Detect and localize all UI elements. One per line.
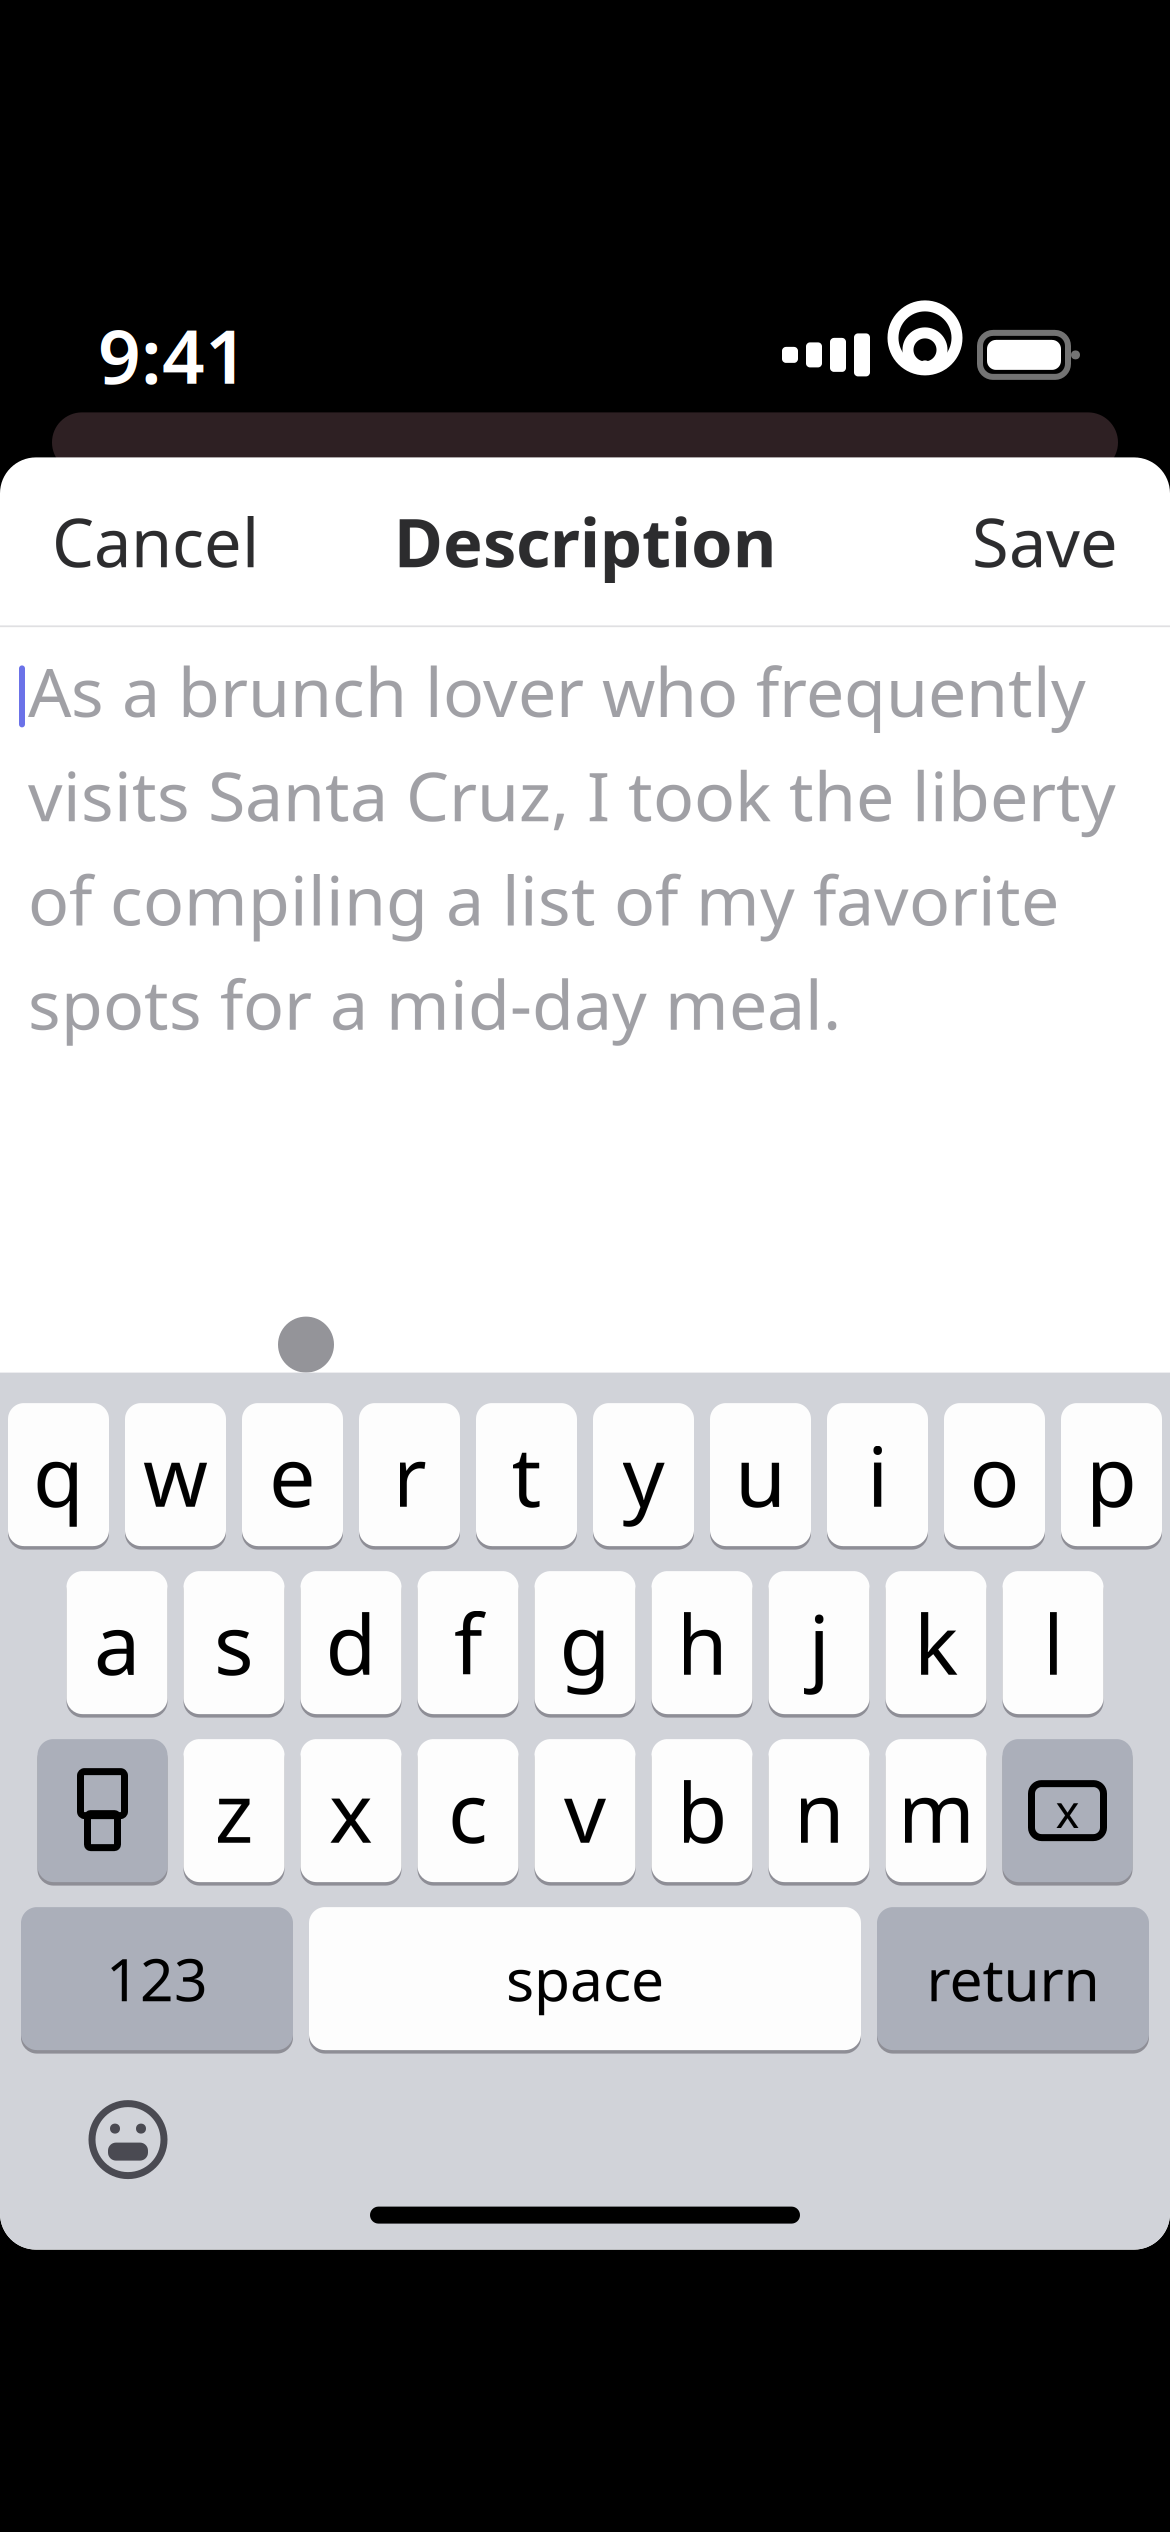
staticText: return bbox=[926, 1940, 1099, 2017]
button[interactable]: a bbox=[66, 1568, 167, 1718]
staticText: d bbox=[325, 1588, 376, 1697]
button[interactable]: d bbox=[300, 1568, 401, 1718]
staticText: h bbox=[676, 1588, 727, 1697]
button[interactable]: p bbox=[1061, 1400, 1162, 1550]
staticText: space bbox=[506, 1940, 664, 2017]
staticText: Cancel bbox=[52, 497, 259, 586]
button[interactable]: g bbox=[534, 1568, 635, 1718]
button[interactable]: n bbox=[768, 1736, 869, 1886]
button[interactable]: Delete bbox=[1002, 1736, 1132, 1886]
staticText: x bbox=[1055, 1780, 1079, 1841]
staticText: t bbox=[511, 1420, 541, 1529]
button[interactable]: o bbox=[944, 1400, 1045, 1550]
staticText: x bbox=[329, 1756, 373, 1865]
staticText: o bbox=[969, 1420, 1019, 1529]
button[interactable]: h bbox=[651, 1568, 752, 1718]
staticText: u bbox=[735, 1420, 786, 1529]
button[interactable]: r bbox=[359, 1400, 460, 1550]
staticText: v bbox=[564, 1756, 606, 1865]
button[interactable]: q bbox=[8, 1400, 109, 1550]
staticText: r bbox=[392, 1420, 426, 1529]
button[interactable]: k bbox=[885, 1568, 986, 1718]
button[interactable]: space bbox=[309, 1904, 861, 2054]
button[interactable]: i bbox=[827, 1400, 928, 1550]
button[interactable]: Shift bbox=[37, 1736, 167, 1886]
staticText: w bbox=[143, 1420, 208, 1529]
staticText: Description bbox=[394, 497, 776, 586]
button[interactable]: return bbox=[877, 1904, 1149, 2054]
button[interactable]: e bbox=[242, 1400, 343, 1550]
button[interactable]: b bbox=[651, 1736, 752, 1886]
button[interactable]: t bbox=[476, 1400, 577, 1550]
button[interactable]: Save bbox=[938, 475, 1152, 608]
button[interactable]: x bbox=[300, 1736, 401, 1886]
staticText: 9:41 bbox=[98, 305, 248, 404]
staticText: p bbox=[1086, 1420, 1137, 1529]
button[interactable]: w bbox=[125, 1400, 226, 1550]
button[interactable]: m bbox=[885, 1736, 986, 1886]
staticText: y bbox=[622, 1420, 664, 1529]
staticText: z bbox=[214, 1756, 253, 1865]
button[interactable]: j bbox=[768, 1568, 869, 1718]
button[interactable]: v bbox=[534, 1736, 635, 1886]
staticText: l bbox=[1042, 1588, 1063, 1697]
staticText: q bbox=[33, 1420, 84, 1529]
button[interactable]: l bbox=[1002, 1568, 1103, 1718]
staticText: f bbox=[454, 1588, 482, 1697]
staticText: k bbox=[914, 1588, 958, 1697]
button[interactable]: f bbox=[417, 1568, 518, 1718]
button[interactable]: u bbox=[710, 1400, 811, 1550]
button[interactable]: Cancel bbox=[18, 475, 293, 608]
button[interactable]: s bbox=[183, 1568, 284, 1718]
button[interactable]: c bbox=[417, 1736, 518, 1886]
button[interactable]: z bbox=[183, 1736, 284, 1886]
staticText: m bbox=[897, 1756, 974, 1865]
staticText: b bbox=[676, 1756, 727, 1865]
button[interactable]: y bbox=[593, 1400, 694, 1550]
staticText: s bbox=[214, 1588, 254, 1697]
staticText: i bbox=[867, 1420, 888, 1529]
staticText: a bbox=[94, 1588, 140, 1697]
button[interactable]: Emoji bbox=[0, 2076, 168, 2204]
staticText: j bbox=[808, 1588, 829, 1697]
staticText: Save bbox=[972, 497, 1118, 586]
staticText: 123 bbox=[106, 1940, 208, 2017]
button[interactable]: 123 bbox=[21, 1904, 293, 2054]
staticText: c bbox=[448, 1756, 488, 1865]
staticText: e bbox=[269, 1420, 316, 1529]
staticText: g bbox=[559, 1588, 610, 1697]
staticText: As a brunch lover who frequently visits … bbox=[28, 645, 1116, 1049]
staticText: n bbox=[793, 1756, 844, 1865]
